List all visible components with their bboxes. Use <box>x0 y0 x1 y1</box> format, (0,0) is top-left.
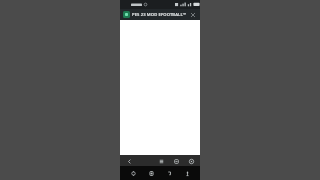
button[interactable]: Back <box>124 156 134 166</box>
button[interactable]: Assistant <box>182 168 192 178</box>
button[interactable]: Recents <box>146 168 156 178</box>
button[interactable]: Back navigation <box>164 168 174 178</box>
staticText: PES 23 MOD EFOOTBALL™ <box>132 12 189 18</box>
button[interactable]: Close <box>189 11 197 19</box>
button[interactable]: Menu <box>156 156 166 166</box>
button[interactable]: Settings <box>186 156 196 166</box>
button[interactable]: Tabs <box>171 156 181 166</box>
button[interactable]: Home <box>128 168 138 178</box>
